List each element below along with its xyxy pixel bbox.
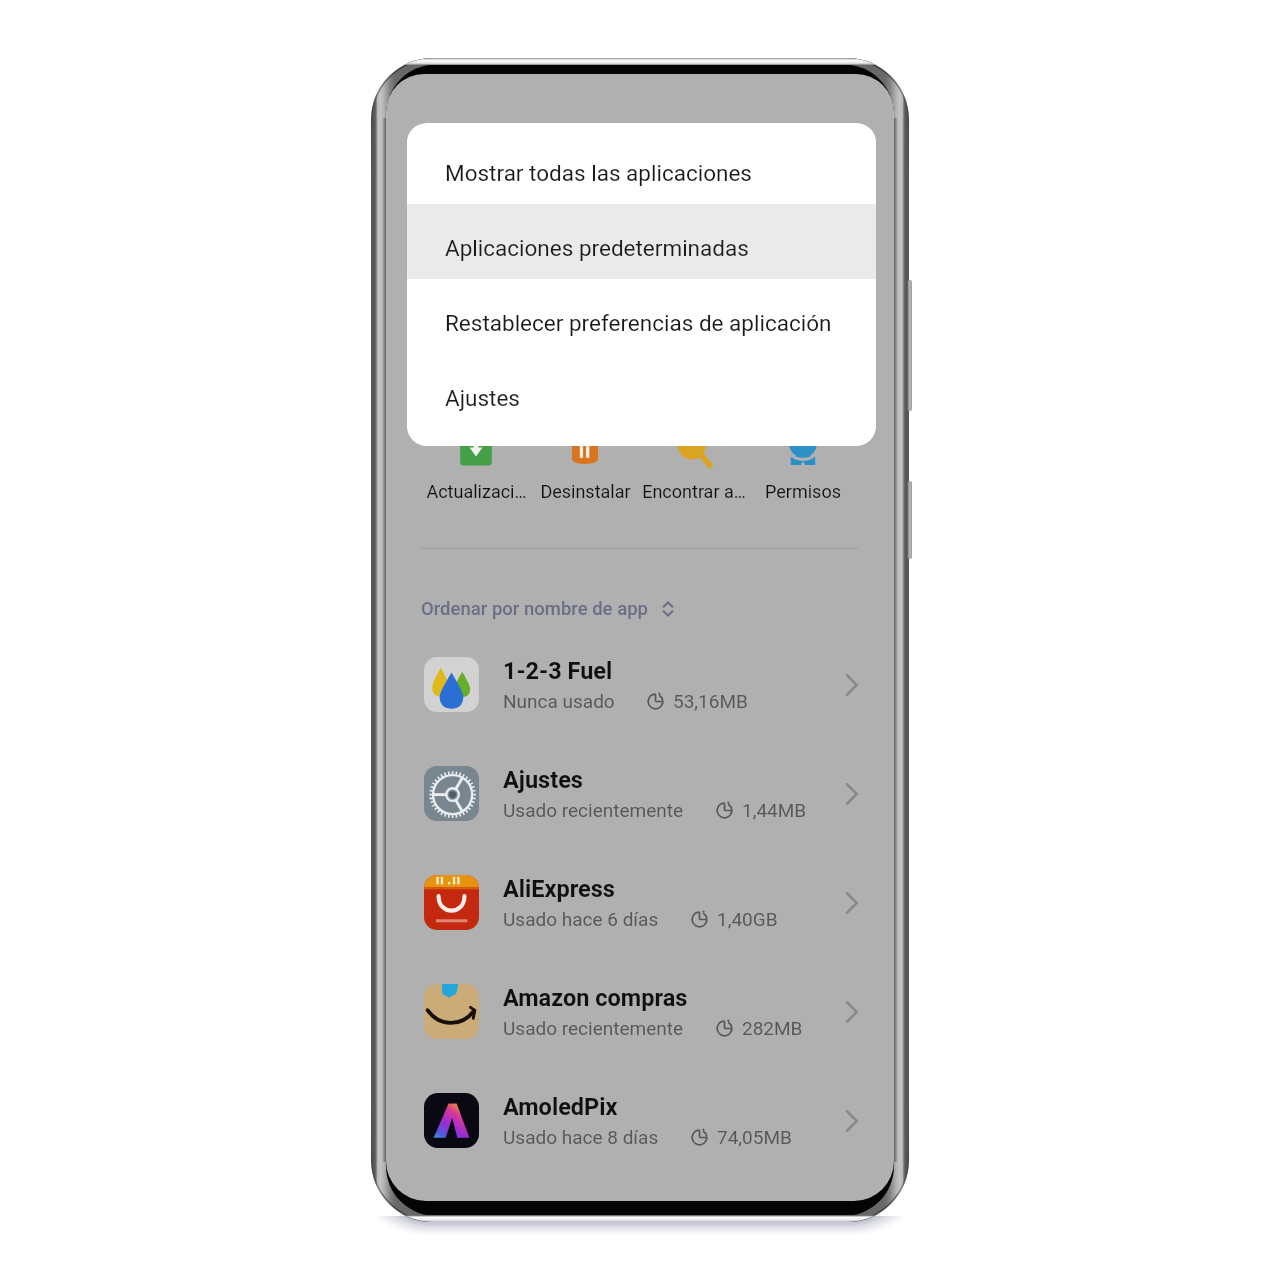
other: Actualizaciones [458,432,494,468]
staticText: Mostrar todas las aplicaciones [445,160,752,186]
other: Desinstalar [567,432,603,468]
staticText: Usado recientemente [503,1017,684,1039]
button[interactable]: Ajustes [407,354,876,429]
button[interactable]: Aplicaciones predeterminadas [407,204,876,279]
button[interactable]: Permisos [749,432,857,502]
staticText: AliExpress [503,875,615,903]
button[interactable]: Ajustes [386,739,894,848]
button[interactable]: Amazon compras [386,957,894,1066]
staticText: 74,05MB [717,1126,792,1148]
staticText: Usado hace 8 días [503,1126,659,1148]
other: Encontrar aplicaciones [676,432,712,468]
button[interactable]: Ordenar por nombre de app [421,598,677,620]
staticText: Amazon compras [503,984,688,1012]
staticText: Restablecer preferencias de aplicación [445,310,832,336]
button[interactable]: Restablecer preferencias de aplicación [407,279,876,354]
button[interactable]: Mostrar todas las aplicaciones [407,129,876,204]
button[interactable]: 1-2-3 Fuel [386,630,894,739]
staticText: 53,16MB [673,690,748,712]
staticText: 1-2-3 Fuel [503,657,613,685]
staticText: Nunca usado [503,690,615,712]
staticText: Usado recientemente [503,799,684,821]
button[interactable]: Actualizaciones [422,432,530,502]
other: Permisos [785,432,821,468]
button[interactable]: Encontrar aplicaciones [640,432,748,502]
staticText: Usado hace 6 días [503,908,659,930]
button[interactable]: Desinstalar [531,432,639,502]
button[interactable]: AliExpress [386,848,894,957]
staticText: 1,44MB [742,799,807,821]
staticText: Ajustes [503,766,583,794]
staticText: Aplicaciones predeterminadas [445,235,749,261]
staticText: Permisos [765,481,841,502]
button[interactable]: AmoledPix [386,1066,894,1175]
staticText: AmoledPix [503,1093,618,1121]
staticText: Ajustes [445,385,520,411]
staticText: Actualizaci… [426,481,527,502]
staticText: 1,40GB [717,908,778,930]
staticText: Encontrar a… [642,481,746,502]
staticText: Ordenar por nombre de app [421,598,649,620]
staticText: Desinstalar [540,481,631,502]
staticText: 282MB [742,1017,803,1039]
